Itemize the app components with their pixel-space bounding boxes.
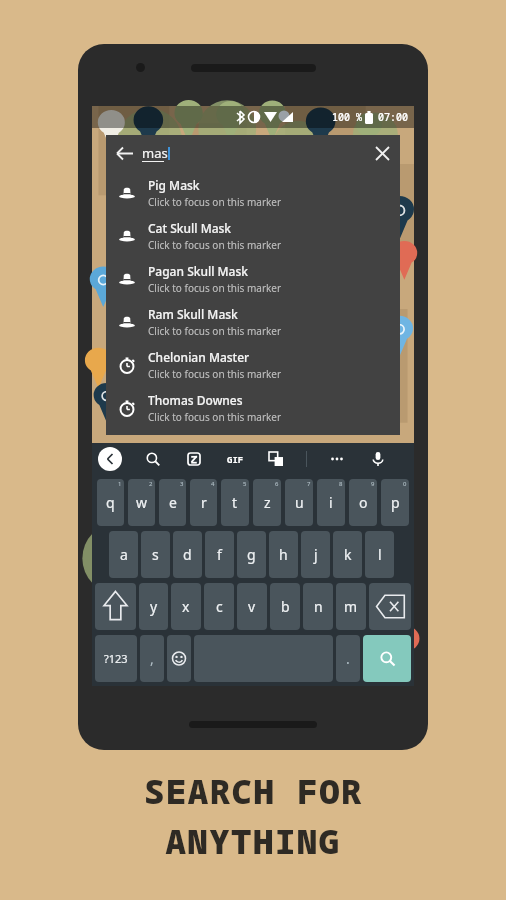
staticText: mas	[142, 144, 168, 162]
staticText: 0	[403, 480, 407, 488]
button[interactable]: d	[173, 531, 202, 578]
staticText: 6	[275, 480, 279, 488]
staticText: l	[378, 545, 382, 564]
button[interactable]: e	[159, 479, 186, 526]
staticText: Pig Mask	[148, 177, 200, 193]
button[interactable]: GIF	[224, 448, 246, 470]
button[interactable]: Emoji	[167, 635, 191, 682]
button[interactable]: Search	[363, 635, 411, 682]
button[interactable]: Collapse toolbar	[98, 447, 122, 471]
staticText: r	[201, 493, 207, 512]
button[interactable]: q	[97, 479, 124, 526]
button[interactable]: t	[221, 479, 249, 526]
button[interactable]: h	[269, 531, 298, 578]
staticText: Cat Skull Mask	[148, 220, 232, 236]
button[interactable]: Clear search	[364, 135, 400, 171]
staticText: u	[295, 493, 304, 512]
staticText: Chelonian Master	[148, 349, 250, 365]
button[interactable]: r	[190, 479, 217, 526]
staticText: .	[346, 649, 350, 668]
button[interactable]: s	[141, 531, 170, 578]
staticText: k	[344, 545, 352, 564]
button[interactable]: z	[253, 479, 281, 526]
staticText: z	[264, 493, 271, 512]
staticText: 3	[180, 480, 184, 488]
button[interactable]: Back	[106, 135, 142, 171]
button[interactable]: i	[317, 479, 345, 526]
staticText: ?123	[104, 651, 128, 666]
button[interactable]: Pig Mask	[106, 171, 400, 214]
staticText: 2	[149, 480, 153, 488]
button[interactable]: .	[336, 635, 360, 682]
button[interactable]: y	[139, 583, 168, 630]
staticText: Thomas Downes	[148, 392, 243, 408]
button[interactable]: Chelonian Master	[106, 343, 400, 386]
button[interactable]: x	[171, 583, 201, 630]
staticText: Click to focus on this marker	[148, 324, 282, 338]
button[interactable]: Voice input	[367, 448, 389, 470]
button[interactable]: l	[365, 531, 394, 578]
button[interactable]: c	[204, 583, 234, 630]
button[interactable]: f	[205, 531, 234, 578]
button[interactable]: u	[285, 479, 313, 526]
staticText: j	[314, 545, 318, 564]
button[interactable]: Back	[106, 135, 400, 171]
staticText: ,	[150, 649, 154, 668]
button[interactable]: m	[336, 583, 366, 630]
button[interactable]: o	[349, 479, 377, 526]
staticText: n	[314, 597, 323, 616]
staticText: i	[329, 493, 333, 512]
staticText: w	[136, 493, 148, 512]
button[interactable]: Pagan Skull Mask	[106, 257, 400, 300]
button[interactable]: Ram Skull Mask	[106, 300, 400, 343]
button[interactable]: Thomas Downes	[106, 386, 400, 429]
staticText: y	[150, 597, 158, 616]
button[interactable]: Translate	[265, 448, 287, 470]
staticText: p	[391, 493, 400, 512]
button[interactable]: Shift	[95, 583, 136, 630]
staticText: Ram Skull Mask	[148, 306, 238, 322]
button[interactable]: j	[301, 531, 330, 578]
staticText: Click to focus on this marker	[148, 367, 282, 381]
staticText: 7	[307, 480, 311, 488]
button[interactable]: ,	[140, 635, 164, 682]
staticText: 8	[339, 480, 343, 488]
staticText: Pagan Skull Mask	[148, 263, 248, 279]
staticText: 07:00	[378, 110, 408, 124]
staticText: d	[183, 545, 192, 564]
staticText: ANYTHING	[165, 818, 341, 864]
button[interactable]: Cat Skull Mask	[106, 214, 400, 257]
button[interactable]: More options	[326, 448, 348, 470]
button[interactable]: p	[381, 479, 409, 526]
staticText: m	[344, 597, 358, 616]
staticText: t	[232, 493, 238, 512]
button[interactable]: Search	[142, 448, 164, 470]
button[interactable]: v	[237, 583, 267, 630]
button[interactable]: a	[109, 531, 138, 578]
staticText: Click to focus on this marker	[148, 410, 282, 424]
button[interactable]: Stickers	[183, 448, 205, 470]
staticText: 4	[211, 480, 215, 488]
staticText: s	[152, 545, 159, 564]
staticText: e	[169, 493, 177, 512]
staticText: 9	[371, 480, 375, 488]
button[interactable]: ?123	[95, 635, 137, 682]
staticText: c	[216, 597, 223, 616]
staticText: a	[120, 545, 128, 564]
staticText: q	[106, 493, 115, 512]
staticText: GIF	[227, 453, 244, 465]
button[interactable]: k	[333, 531, 362, 578]
staticText: g	[247, 545, 256, 564]
staticText: SEARCH FOR	[144, 768, 363, 814]
staticText: 5	[243, 480, 247, 488]
button[interactable]: Backspace	[369, 583, 411, 630]
button[interactable]: g	[237, 531, 266, 578]
button[interactable]: w	[128, 479, 155, 526]
staticText: v	[248, 597, 256, 616]
button[interactable]: n	[303, 583, 333, 630]
staticText: 100 %	[332, 110, 362, 124]
staticText: Click to focus on this marker	[148, 238, 282, 252]
staticText: Click to focus on this marker	[148, 281, 282, 295]
button[interactable]: b	[270, 583, 300, 630]
